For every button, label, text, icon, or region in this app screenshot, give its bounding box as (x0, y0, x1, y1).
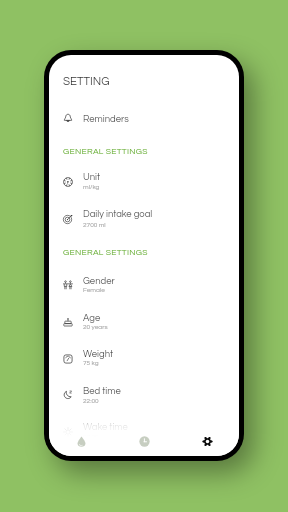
staticText: 07:00 (83, 434, 99, 441)
staticText: ml/kg (83, 184, 100, 191)
staticText: 75 kg (83, 360, 99, 367)
button[interactable]: Settings (176, 426, 239, 456)
button[interactable]: Unit (49, 165, 239, 199)
button[interactable]: Age (49, 305, 239, 339)
staticText: Female (83, 287, 105, 294)
staticText: Gender (83, 276, 115, 286)
staticText: Daily intake goal (83, 209, 153, 219)
staticText: Reminders (83, 114, 129, 124)
button[interactable]: Water intake (49, 426, 113, 456)
staticText: Bed time (83, 386, 121, 396)
staticText: Age (83, 313, 101, 323)
staticText: Unit (83, 172, 101, 182)
button[interactable]: Weight (49, 342, 239, 376)
staticText: SETTING (63, 76, 110, 88)
staticText: 2700 ml (83, 222, 106, 229)
staticText: Wake time (83, 422, 128, 432)
button[interactable]: Daily intake goal (49, 202, 239, 236)
button[interactable]: Wake time (49, 415, 239, 449)
button[interactable]: Reminders (49, 101, 239, 135)
staticText: GENERAL SETTINGS (63, 248, 148, 257)
button[interactable]: Bed time (49, 378, 239, 412)
staticText: 22:00 (83, 398, 99, 405)
staticText: 20 years (83, 324, 108, 331)
button[interactable]: History (113, 426, 176, 456)
button[interactable]: Gender (49, 268, 239, 302)
staticText: GENERAL SETTINGS (63, 147, 148, 156)
staticText: Weight (83, 349, 114, 359)
